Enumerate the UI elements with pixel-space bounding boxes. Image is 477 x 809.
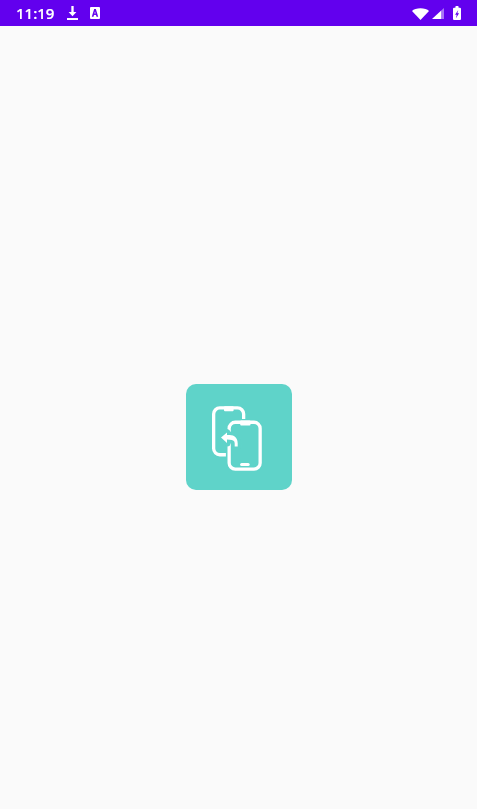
button[interactable]: Phone clone app icon bbox=[186, 384, 292, 490]
staticText: 11:19 bbox=[16, 3, 55, 23]
